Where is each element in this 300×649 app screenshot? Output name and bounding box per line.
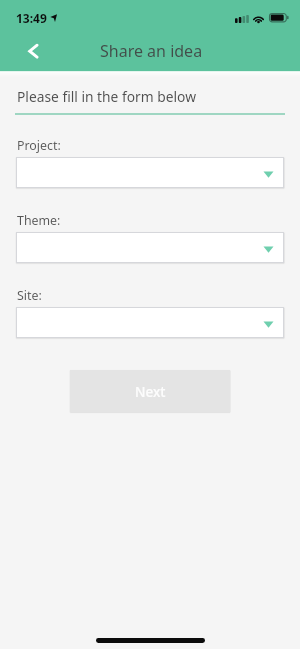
other: Location — [50, 14, 59, 23]
button[interactable]: Next — [70, 370, 230, 412]
button[interactable]: Theme: dropdown — [16, 232, 284, 263]
staticText: Project: — [17, 137, 61, 154]
button[interactable]: Back — [19, 37, 48, 66]
staticText: Site: — [17, 287, 42, 304]
button[interactable]: Project: dropdown — [16, 157, 284, 188]
staticText: Theme: — [17, 212, 61, 229]
staticText: Share an idea — [100, 40, 203, 62]
button[interactable]: Site: dropdown — [16, 307, 284, 338]
staticText: Please fill in the form below — [17, 87, 196, 106]
staticText: Next — [135, 383, 166, 401]
staticText: 13:49 — [16, 10, 47, 26]
